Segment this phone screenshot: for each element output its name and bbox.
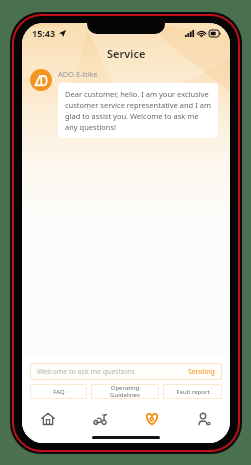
button[interactable]: FAQ	[30, 384, 87, 399]
staticText: ADO E-bike	[58, 69, 98, 79]
staticText: 15:43	[32, 27, 56, 39]
button[interactable]: Operating Guidelines	[91, 384, 159, 399]
staticText: Dear customer, hello. I am your exclusiv…	[65, 89, 211, 132]
button[interactable]: Profile	[178, 406, 230, 432]
staticText: Operating Guidelines	[110, 384, 140, 399]
button[interactable]: Welcome to ask me questions	[30, 363, 222, 380]
staticText: Fault report	[176, 388, 210, 396]
staticText: FAQ	[53, 388, 65, 396]
staticText: Service	[107, 46, 146, 61]
button[interactable]: Fault report	[163, 384, 222, 399]
staticText: Sending	[188, 367, 215, 377]
button[interactable]: Rides	[74, 406, 126, 432]
button[interactable]: Service	[126, 406, 178, 432]
button[interactable]: Home	[22, 406, 74, 432]
staticText: Welcome to ask me questions	[37, 367, 188, 377]
